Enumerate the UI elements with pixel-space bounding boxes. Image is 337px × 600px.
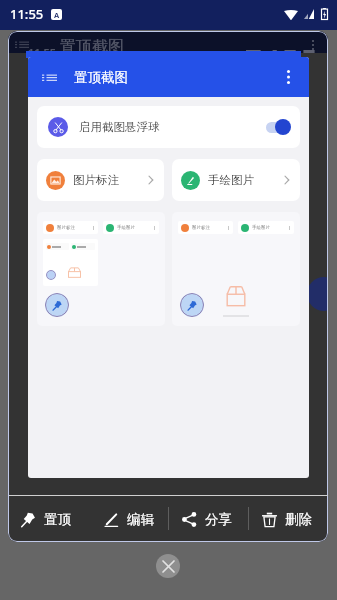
- staticText: 置顶: [44, 511, 71, 528]
- button[interactable]: More options: [277, 66, 299, 88]
- staticText: 手绘图片: [208, 173, 254, 187]
- staticText: 图片标注: [73, 173, 119, 187]
- staticText: 图片标注: [192, 225, 210, 231]
- staticText: 11:55: [28, 45, 57, 60]
- button[interactable]: 置顶: [9, 499, 82, 539]
- button[interactable]: 图片标注: [172, 212, 300, 326]
- staticText: 手绘图片: [117, 225, 135, 231]
- button[interactable]: 删除: [250, 499, 322, 539]
- button[interactable]: 图片标注: [37, 159, 164, 201]
- staticText: 删除: [285, 511, 312, 528]
- staticText: 置顶截图: [74, 69, 128, 86]
- staticText: 置顶截图: [60, 37, 124, 57]
- button[interactable]: 启用截图悬浮球: [37, 106, 300, 148]
- button[interactable]: 图片标注: [37, 212, 165, 326]
- button[interactable]: 手绘图片: [172, 159, 300, 201]
- button[interactable]: 编辑: [90, 499, 166, 539]
- staticText: 分享: [205, 511, 232, 528]
- staticText: 编辑: [127, 511, 154, 528]
- staticText: 启用截图悬浮球: [79, 120, 160, 134]
- staticText: 11:55: [10, 5, 44, 23]
- staticText: A: [54, 10, 60, 20]
- staticText: 手绘图片: [252, 225, 270, 231]
- button[interactable]: Menu: [41, 69, 57, 85]
- button[interactable]: 分享: [170, 499, 242, 539]
- staticText: 图片标注: [57, 225, 75, 231]
- button[interactable]: Close: [156, 554, 180, 578]
